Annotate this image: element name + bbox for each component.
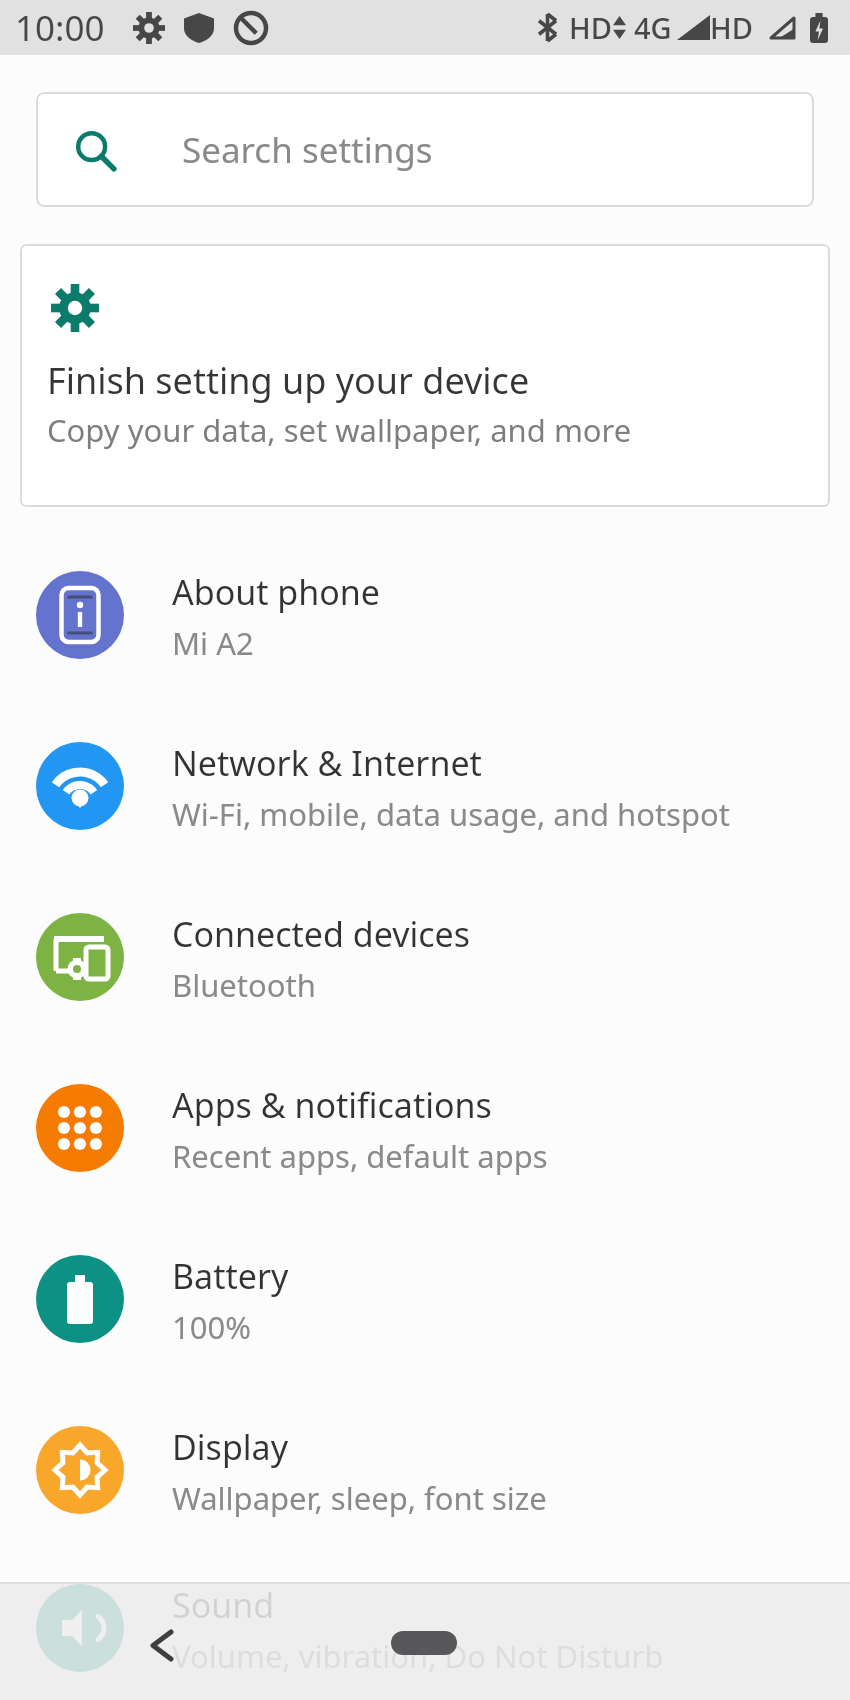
staticText: 100% — [172, 1306, 251, 1348]
button[interactable]: Finish setting up your device — [20, 244, 830, 507]
button[interactable]: Sound — [0, 1555, 850, 1700]
staticText: 4G — [634, 8, 672, 47]
staticText: Battery — [172, 1253, 289, 1299]
button[interactable]: Connected devices — [0, 871, 850, 1042]
staticText: Recent apps, default apps — [172, 1135, 548, 1177]
button[interactable]: Search settings — [36, 92, 814, 207]
button[interactable]: Battery — [0, 1213, 850, 1384]
button[interactable]: Apps & notifications — [0, 1042, 850, 1213]
button[interactable]: Display — [0, 1384, 850, 1555]
staticText: Wallpaper, sleep, font size — [172, 1477, 547, 1519]
staticText: Sound — [172, 1582, 275, 1628]
staticText: About phone — [172, 569, 381, 615]
button[interactable]: About phone — [0, 529, 850, 700]
staticText: Volume, vibration, Do Not Disturb — [172, 1635, 664, 1677]
staticText: Network & Internet — [172, 740, 482, 786]
staticText: Search settings — [182, 126, 433, 174]
staticText: 10:00 — [15, 4, 105, 52]
button[interactable]: Network & Internet — [0, 700, 850, 871]
staticText: Connected devices — [172, 911, 471, 957]
button[interactable] — [391, 1631, 457, 1655]
staticText: Mi A2 — [172, 622, 254, 664]
button[interactable] — [137, 1621, 185, 1669]
staticText: Finish setting up your device — [47, 356, 530, 405]
staticText: Copy your data, set wallpaper, and more — [47, 409, 632, 451]
staticText: HD — [569, 8, 612, 47]
staticText: Apps & notifications — [172, 1082, 492, 1128]
staticText: Bluetooth — [172, 964, 316, 1006]
staticText: HD — [710, 8, 753, 47]
staticText: Wi-Fi, mobile, data usage, and hotspot — [172, 793, 730, 835]
staticText: Display — [172, 1424, 288, 1470]
